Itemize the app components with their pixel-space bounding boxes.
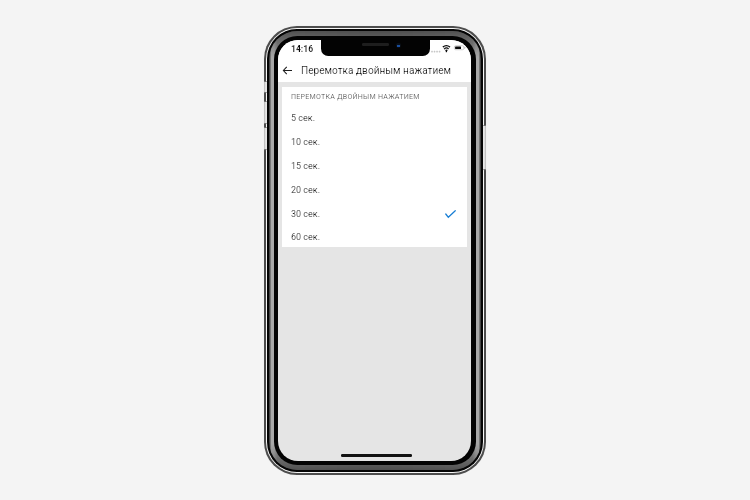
- staticText: 20 сек.: [291, 185, 321, 196]
- staticText: 30 сек.: [291, 209, 321, 220]
- button[interactable]: 15 сек.: [282, 153, 467, 177]
- button[interactable]: 10 сек.: [282, 129, 467, 153]
- staticText: 10 сек.: [291, 137, 321, 148]
- button[interactable]: 20 сек.: [282, 177, 467, 201]
- button[interactable]: Back: [278, 57, 298, 83]
- staticText: 5 сек.: [291, 113, 316, 124]
- button[interactable]: 60 сек.: [282, 225, 467, 247]
- button[interactable]: 30 сек.: [282, 201, 467, 225]
- staticText: 14:16: [291, 44, 314, 54]
- staticText: Перемотка двойным нажатием: [301, 65, 452, 77]
- staticText: ПЕРЕМОТКА ДВОЙНЫМ НАЖАТИЕМ: [291, 92, 420, 100]
- staticText: 60 сек.: [291, 232, 321, 243]
- staticText: 15 сек.: [291, 161, 321, 172]
- button[interactable]: 5 сек.: [282, 105, 467, 129]
